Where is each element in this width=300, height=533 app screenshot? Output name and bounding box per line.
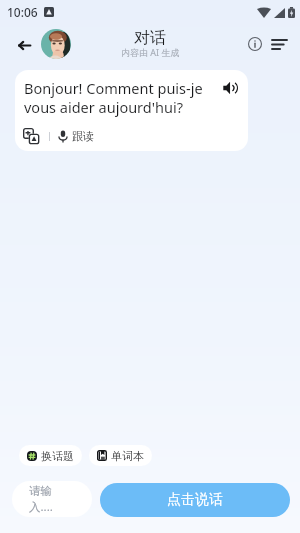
- staticText: 跟读: [72, 129, 94, 143]
- button[interactable]: Play audio: [219, 77, 241, 99]
- button[interactable]: 点击说话: [100, 483, 290, 517]
- button[interactable]: Info: [244, 33, 266, 55]
- button[interactable]: Bonjour! Comment puis-je vous aider aujo…: [15, 70, 248, 151]
- staticText: 请输入....: [29, 484, 56, 514]
- staticText: 单词本: [111, 449, 144, 463]
- staticText: 换话题: [41, 449, 74, 463]
- staticText: 点击说话: [167, 491, 223, 509]
- staticText: Bonjour! Comment puis-je vous aider aujo…: [24, 78, 206, 117]
- button[interactable]: Profile: [41, 29, 71, 59]
- button[interactable]: 单词本: [89, 445, 152, 466]
- button[interactable]: 换话题: [19, 445, 82, 466]
- staticText: 10:06: [7, 4, 38, 20]
- button[interactable]: Back: [11, 32, 37, 58]
- button[interactable]: 跟读: [58, 129, 94, 143]
- button[interactable]: Translate: [22, 127, 40, 145]
- button[interactable]: 请输入....: [12, 481, 92, 517]
- staticText: 对话: [134, 28, 166, 48]
- button[interactable]: Menu: [268, 33, 290, 55]
- staticText: 内容由 AI 生成: [121, 46, 180, 58]
